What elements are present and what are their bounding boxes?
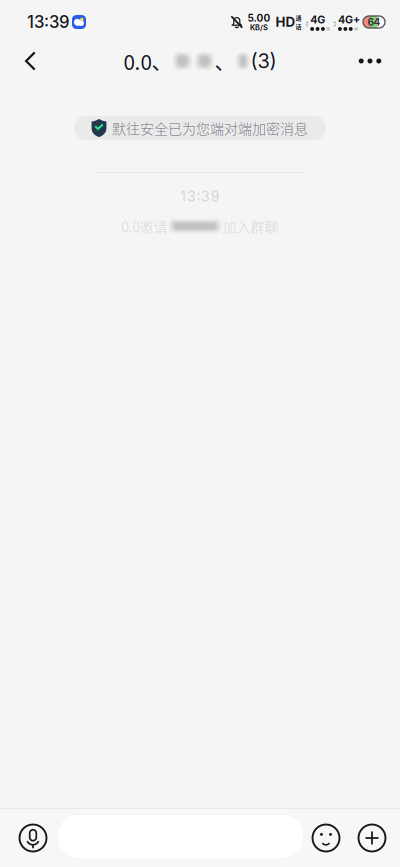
staticText: 通 — [295, 13, 301, 22]
staticText: 、 — [214, 46, 235, 76]
staticText: 话 — [295, 22, 301, 31]
button[interactable]: More options — [348, 39, 392, 83]
staticText: 4G — [310, 13, 325, 26]
button[interactable]: Back — [8, 39, 52, 83]
staticText: 5.00 — [247, 12, 270, 24]
staticText: (3) — [250, 49, 276, 73]
button[interactable]: Message input field — [58, 809, 303, 867]
staticText: 13:39 — [180, 188, 220, 205]
staticText: 0.0、 — [123, 46, 172, 76]
staticText: 64 — [367, 16, 380, 28]
staticText: 4G+ — [338, 13, 360, 26]
button[interactable]: Voice message — [9, 809, 57, 867]
staticText: 0.0邀请 — [121, 216, 167, 236]
button[interactable]: More — [349, 809, 395, 867]
staticText: 加入群聊 — [222, 216, 278, 236]
button[interactable]: Emoji — [303, 809, 349, 867]
staticText: 13:39 — [27, 12, 69, 32]
staticText: KB/S — [250, 23, 268, 32]
staticText: HD — [275, 14, 295, 30]
staticText: 默往安全已为您端对端加密消息 — [112, 118, 308, 138]
